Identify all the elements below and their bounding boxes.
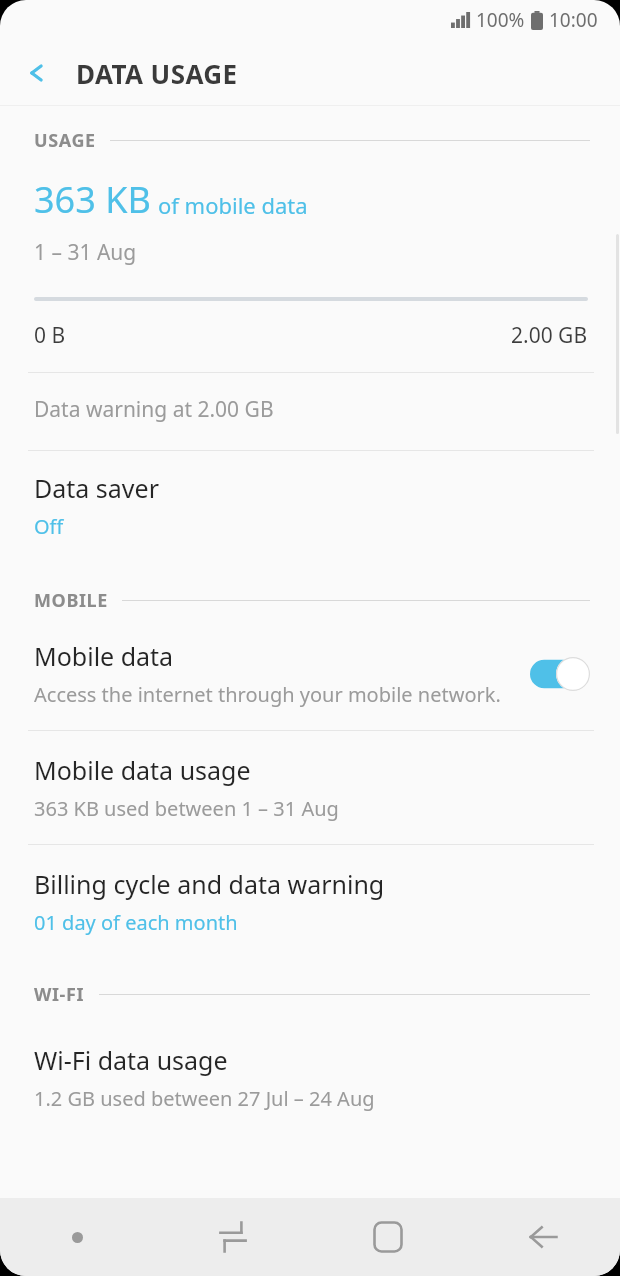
staticText: WI-FI	[34, 982, 85, 1007]
button[interactable]: Billing cycle and data warning	[0, 845, 620, 960]
staticText: Data saver	[34, 471, 159, 505]
staticText: Off	[34, 513, 64, 540]
staticText: 0 B	[34, 321, 66, 350]
staticText: Mobile data usage	[34, 753, 251, 787]
staticText: Data warning at 2.00 GB	[34, 395, 274, 424]
staticText: 01 day of each month	[34, 909, 238, 936]
button[interactable]: Back	[465, 1198, 620, 1276]
button[interactable]: Mobile data toggle, on	[530, 657, 590, 691]
button[interactable]: Back	[0, 40, 76, 106]
staticText: 2.00 GB	[511, 321, 588, 350]
staticText: USAGE	[34, 128, 96, 153]
staticText: MOBILE	[34, 588, 108, 613]
button[interactable]: Home	[310, 1198, 465, 1276]
staticText: of mobile data	[158, 190, 308, 220]
button[interactable]: Data saver	[0, 451, 620, 564]
button[interactable]: Keyboard indicator	[0, 1198, 155, 1276]
staticText: 10:00	[549, 7, 598, 33]
staticText: Mobile data	[34, 639, 174, 673]
staticText: DATA USAGE	[76, 56, 238, 91]
staticText: 100%	[476, 7, 525, 33]
staticText: 363 KB used between 1 – 31 Aug	[34, 795, 339, 822]
staticText: 363 KB	[34, 175, 151, 224]
button[interactable]: Recent apps	[155, 1198, 310, 1276]
staticText: Billing cycle and data warning	[34, 867, 385, 901]
staticText: Access the internet through your mobile …	[34, 681, 501, 708]
button[interactable]: Wi-Fi data usage	[0, 1007, 620, 1132]
button[interactable]: Mobile data	[0, 613, 620, 730]
staticText: 1 – 31 Aug	[34, 238, 137, 267]
staticText: 1.2 GB used between 27 Jul – 24 Aug	[34, 1085, 375, 1112]
button[interactable]: Mobile data usage	[0, 731, 620, 844]
staticText: Wi-Fi data usage	[34, 1043, 228, 1077]
